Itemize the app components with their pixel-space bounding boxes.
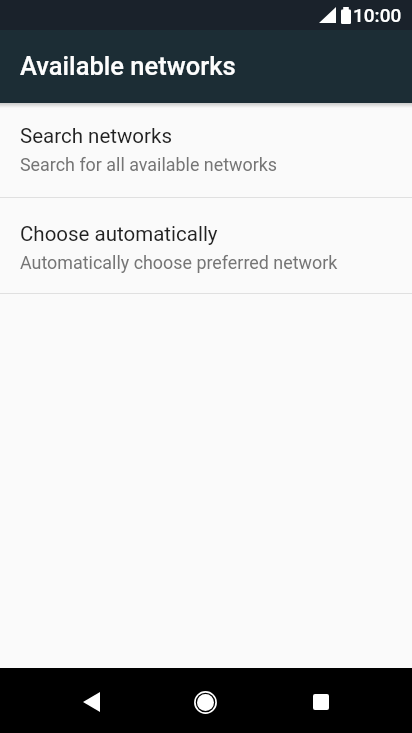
button[interactable] <box>181 678 229 726</box>
staticText: Search for all available networks <box>20 154 278 175</box>
button[interactable] <box>297 678 345 726</box>
staticText: Choose automatically <box>20 222 218 246</box>
button[interactable] <box>67 678 115 726</box>
button[interactable]: Search networks <box>0 108 412 197</box>
staticText: 10:00 <box>353 4 402 26</box>
staticText: Search networks <box>20 124 172 148</box>
staticText: Automatically choose preferred network <box>20 252 338 273</box>
staticText: Available networks <box>20 51 236 81</box>
button[interactable]: Choose automatically <box>0 198 412 293</box>
